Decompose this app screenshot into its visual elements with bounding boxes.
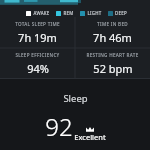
staticText: Sleep: [63, 92, 88, 105]
staticText: 52 bpm: [93, 61, 133, 76]
staticText: 7h 19m: [18, 30, 57, 45]
button[interactable]: Sleep stages chart: [0, 0, 150, 8]
button[interactable]: REM: [56, 10, 74, 16]
staticText: RESTING HEART RATE: [86, 52, 139, 58]
button[interactable]: DEEP: [108, 10, 127, 16]
staticText: 7h 46m: [93, 30, 132, 45]
staticText: 94%: [27, 61, 49, 76]
staticText: LIGHT: [87, 10, 102, 16]
button[interactable]: RESTING HEART RATE: [75, 48, 150, 79]
staticText: REM: [63, 10, 74, 16]
button[interactable]: TOTAL SLEEP TIME: [0, 17, 75, 48]
button[interactable]: LIGHT: [80, 10, 102, 16]
button[interactable]: TIME IN BED: [75, 17, 150, 48]
staticText: 92: [45, 110, 73, 143]
staticText: TOTAL SLEEP TIME: [15, 21, 60, 27]
button[interactable]: Sleep: [0, 79, 150, 150]
button[interactable]: SLEEP EFFICIENCY: [0, 48, 75, 79]
staticText: Excellent: [74, 132, 106, 142]
button[interactable]: AWAKE: [26, 10, 50, 16]
staticText: TIME IN BED: [97, 21, 128, 27]
staticText: AWAKE: [33, 10, 50, 16]
staticText: DEEP: [115, 10, 127, 16]
staticText: SLEEP EFFICIENCY: [15, 52, 60, 58]
other: Excellent crown: [86, 127, 94, 132]
